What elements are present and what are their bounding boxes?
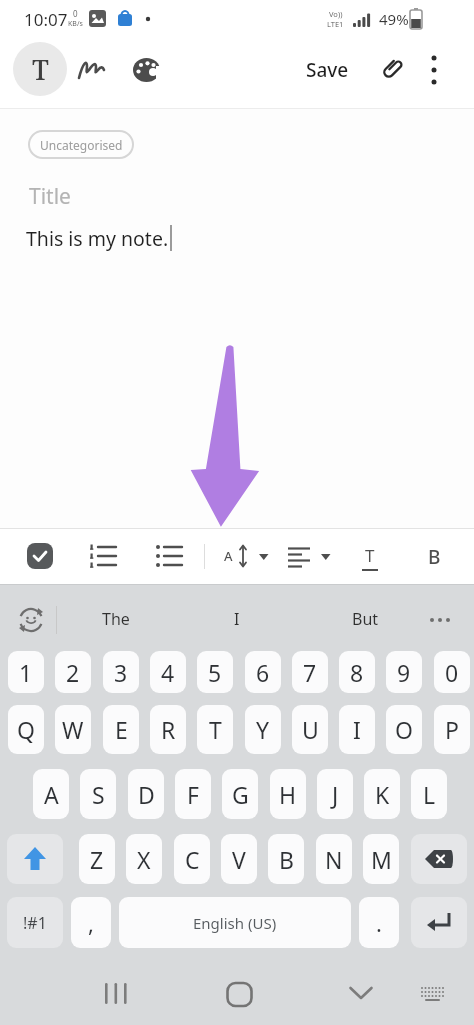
button[interactable]: !#1	[7, 897, 63, 948]
staticText: J	[332, 779, 339, 810]
staticText: 2	[66, 657, 80, 688]
button[interactable]	[18, 607, 45, 634]
button[interactable]: T	[13, 42, 67, 96]
button[interactable]: D	[128, 769, 164, 819]
button[interactable]: T	[197, 705, 233, 754]
button[interactable]: G	[222, 769, 258, 819]
button[interactable]: S	[80, 769, 116, 819]
button[interactable]: 6	[245, 651, 281, 693]
button[interactable]: M	[363, 834, 399, 884]
button[interactable]: R	[150, 705, 186, 754]
button[interactable]: 0	[434, 651, 470, 693]
button[interactable]: But	[310, 594, 420, 644]
staticText: X	[137, 844, 151, 875]
button[interactable]: J	[317, 769, 353, 819]
staticText: This is my note.	[26, 225, 169, 252]
button[interactable]: 9	[386, 651, 422, 693]
button[interactable]	[77, 57, 107, 83]
button[interactable]: B	[268, 834, 304, 884]
button[interactable]	[133, 57, 161, 83]
staticText: T	[209, 714, 222, 745]
staticText: Vo))	[329, 9, 343, 19]
button[interactable]	[378, 55, 406, 83]
button[interactable]	[411, 834, 467, 884]
button[interactable]: F	[175, 769, 211, 819]
staticText: G	[232, 779, 249, 810]
button[interactable]: 3	[103, 651, 139, 693]
button[interactable]: I	[339, 705, 375, 754]
staticText: L	[423, 779, 436, 810]
button[interactable]: H	[270, 769, 306, 819]
button[interactable]: N	[316, 834, 352, 884]
button[interactable]: 4	[150, 651, 186, 693]
button[interactable]: C	[174, 834, 210, 884]
button[interactable]: T	[355, 537, 385, 577]
button[interactable]: K	[364, 769, 400, 819]
button[interactable]	[288, 537, 338, 577]
button[interactable]: ,	[71, 897, 111, 948]
button[interactable]: A	[222, 537, 274, 577]
staticText: .	[376, 908, 382, 938]
button[interactable]: Z	[79, 834, 115, 884]
staticText: Q	[17, 714, 35, 745]
button[interactable]: O	[386, 705, 422, 754]
staticText: T	[32, 51, 49, 88]
staticText: K	[375, 779, 390, 810]
button[interactable]: Q	[8, 705, 44, 754]
button[interactable]: U	[292, 705, 328, 754]
button[interactable]: 8	[339, 651, 375, 693]
button[interactable]: X	[126, 834, 162, 884]
button[interactable]: B	[420, 537, 448, 577]
staticText: 5	[208, 657, 222, 688]
button[interactable]: English (US)	[119, 897, 351, 948]
staticText: Y	[256, 714, 270, 745]
staticText: LTE1	[327, 19, 344, 29]
button[interactable]	[226, 982, 254, 1008]
button[interactable]: Save	[296, 47, 358, 93]
button[interactable]: .	[359, 897, 399, 948]
button[interactable]: I	[187, 594, 287, 644]
staticText: 9	[397, 657, 411, 688]
staticText: KB/s	[68, 19, 83, 29]
staticText: S	[92, 779, 105, 810]
button[interactable]	[27, 543, 54, 570]
button[interactable]	[420, 986, 445, 1002]
staticText: P	[445, 714, 459, 745]
button[interactable]: 2	[55, 651, 91, 693]
button[interactable]	[428, 612, 454, 628]
button[interactable]: 1	[8, 651, 44, 693]
button[interactable]: P	[434, 705, 470, 754]
button[interactable]	[103, 982, 129, 1006]
staticText: O	[395, 714, 413, 745]
staticText: 0	[445, 657, 459, 688]
button[interactable]: Y	[245, 705, 281, 754]
button[interactable]	[424, 52, 444, 92]
staticText: T	[365, 544, 375, 567]
button[interactable]: V	[221, 834, 257, 884]
button[interactable]: W	[55, 705, 91, 754]
button[interactable]	[349, 986, 373, 1002]
button[interactable]: 7	[292, 651, 328, 693]
staticText: Save	[306, 57, 349, 83]
staticText: 8	[350, 657, 364, 688]
button[interactable]	[411, 897, 467, 948]
button[interactable]: 5	[197, 651, 233, 693]
staticText: 0	[73, 8, 78, 19]
staticText: V	[232, 844, 246, 875]
staticText: I	[234, 608, 240, 630]
button[interactable]: A	[33, 769, 69, 819]
staticText: Uncategorised	[40, 137, 123, 153]
staticText: M	[371, 844, 392, 875]
staticText: The	[102, 608, 130, 630]
button[interactable]	[7, 834, 63, 884]
button[interactable]: E	[103, 705, 139, 754]
staticText: H	[279, 779, 297, 810]
button[interactable]	[90, 543, 117, 570]
staticText: R	[161, 714, 176, 745]
button[interactable]: Uncategorised	[28, 130, 134, 159]
button[interactable]	[156, 543, 183, 570]
button[interactable]: L	[411, 769, 447, 819]
staticText: F	[187, 779, 199, 810]
button[interactable]: The	[66, 594, 166, 644]
staticText: !#1	[23, 912, 47, 934]
